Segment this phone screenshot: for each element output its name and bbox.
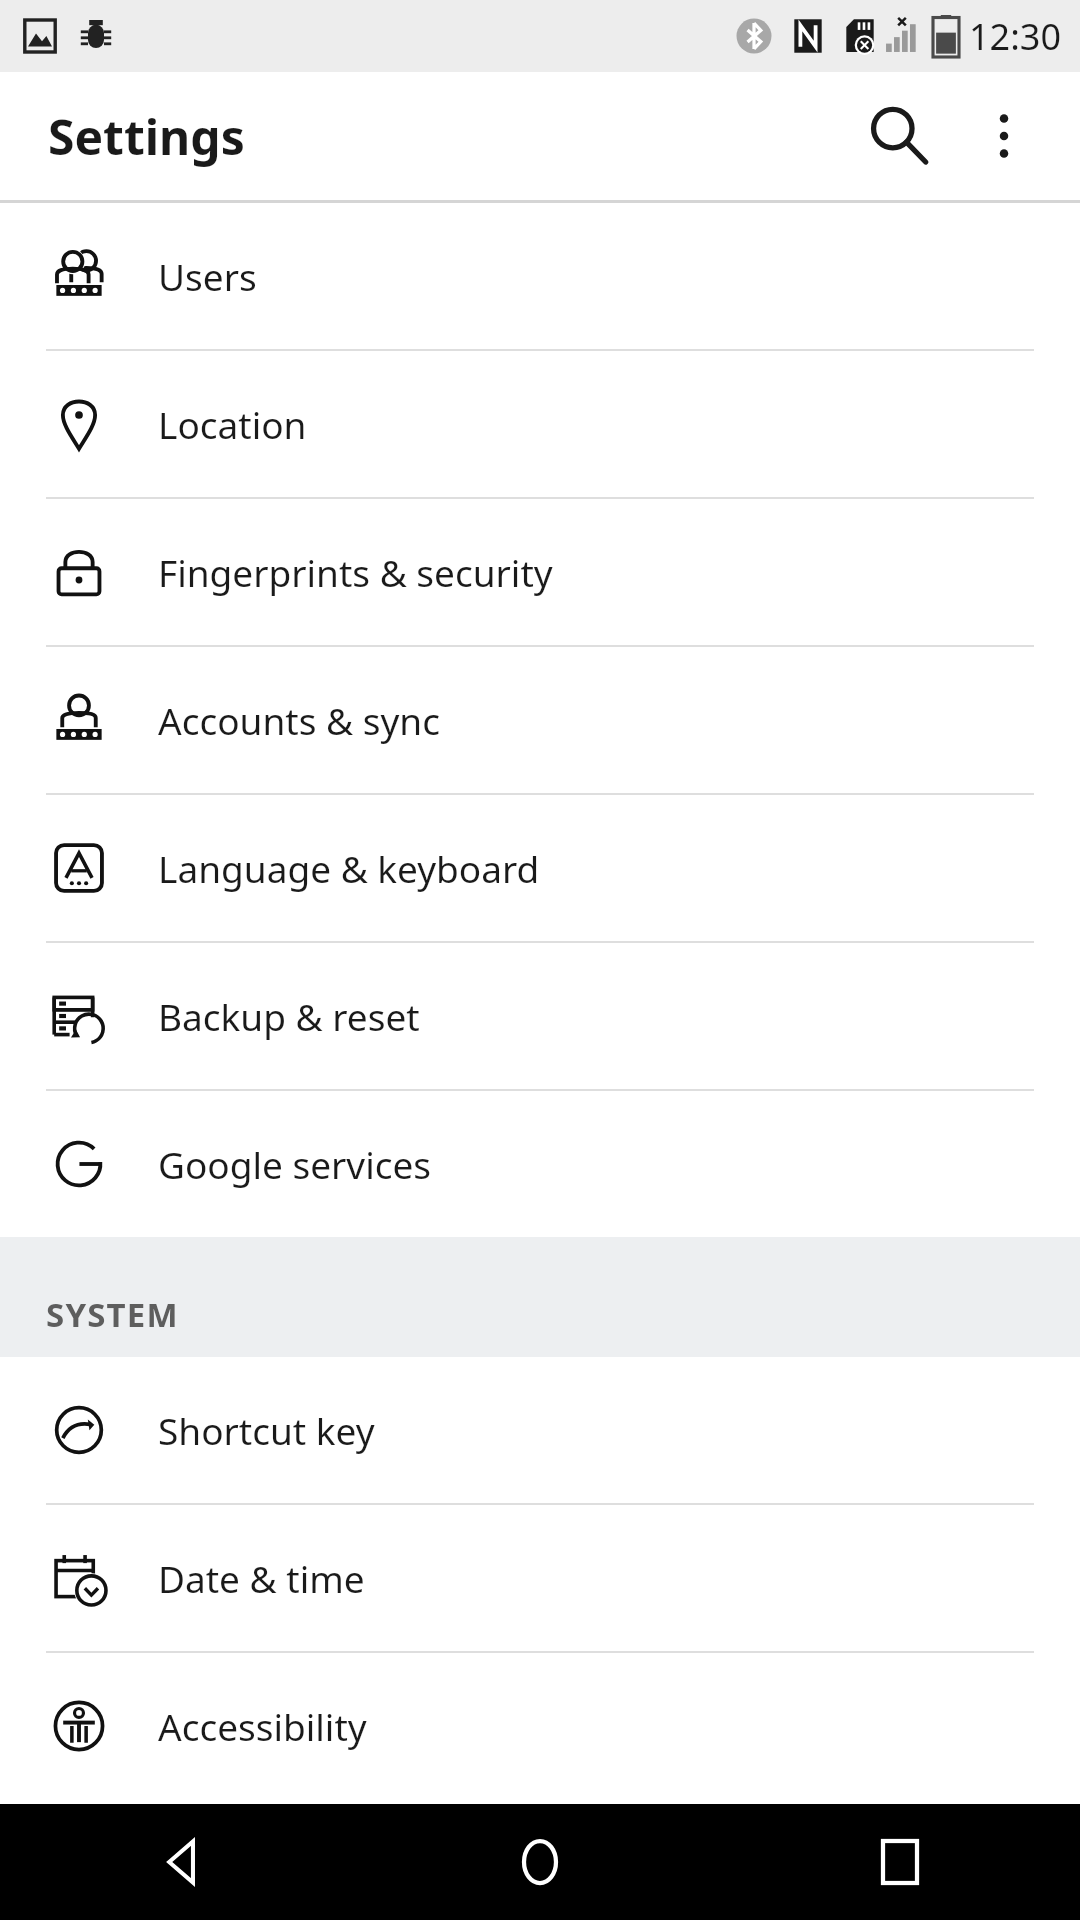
staticText: SYSTEM [46, 1292, 179, 1337]
button[interactable]: Date & time [0, 1505, 1080, 1653]
staticText: Language & keyboard [158, 843, 540, 893]
staticText: Accessibility [158, 1701, 367, 1751]
button[interactable]: Recent apps [720, 1804, 1080, 1920]
staticText: 12:30 [969, 12, 1062, 61]
staticText: Fingerprints & security [158, 547, 553, 597]
staticText: Users [158, 251, 257, 301]
button[interactable]: Backup & reset [0, 943, 1080, 1091]
button[interactable]: Users [0, 203, 1080, 351]
button[interactable]: Home [360, 1804, 720, 1920]
button[interactable]: Accounts & sync [0, 647, 1080, 795]
staticText: Shortcut key [158, 1405, 375, 1455]
staticText: Google services [158, 1139, 432, 1189]
button[interactable]: Back [0, 1804, 360, 1920]
staticText: Date & time [158, 1553, 365, 1603]
staticText: Settings [48, 104, 245, 169]
button[interactable]: Location [0, 351, 1080, 499]
staticText: Location [158, 399, 307, 449]
button[interactable]: More options [954, 86, 1054, 186]
button[interactable]: Search [844, 81, 954, 191]
button[interactable]: Accessibility [0, 1653, 1080, 1799]
button[interactable]: Language & keyboard [0, 795, 1080, 943]
button[interactable]: Google services [0, 1091, 1080, 1237]
button[interactable]: Shortcut key [0, 1357, 1080, 1505]
button[interactable]: Fingerprints & security [0, 499, 1080, 647]
staticText: Accounts & sync [158, 695, 440, 745]
staticText: Backup & reset [158, 991, 420, 1041]
